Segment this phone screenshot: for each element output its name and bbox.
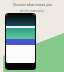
staticText: Discover what moves you [13,3,52,7]
staticText: join the community [20,9,44,13]
